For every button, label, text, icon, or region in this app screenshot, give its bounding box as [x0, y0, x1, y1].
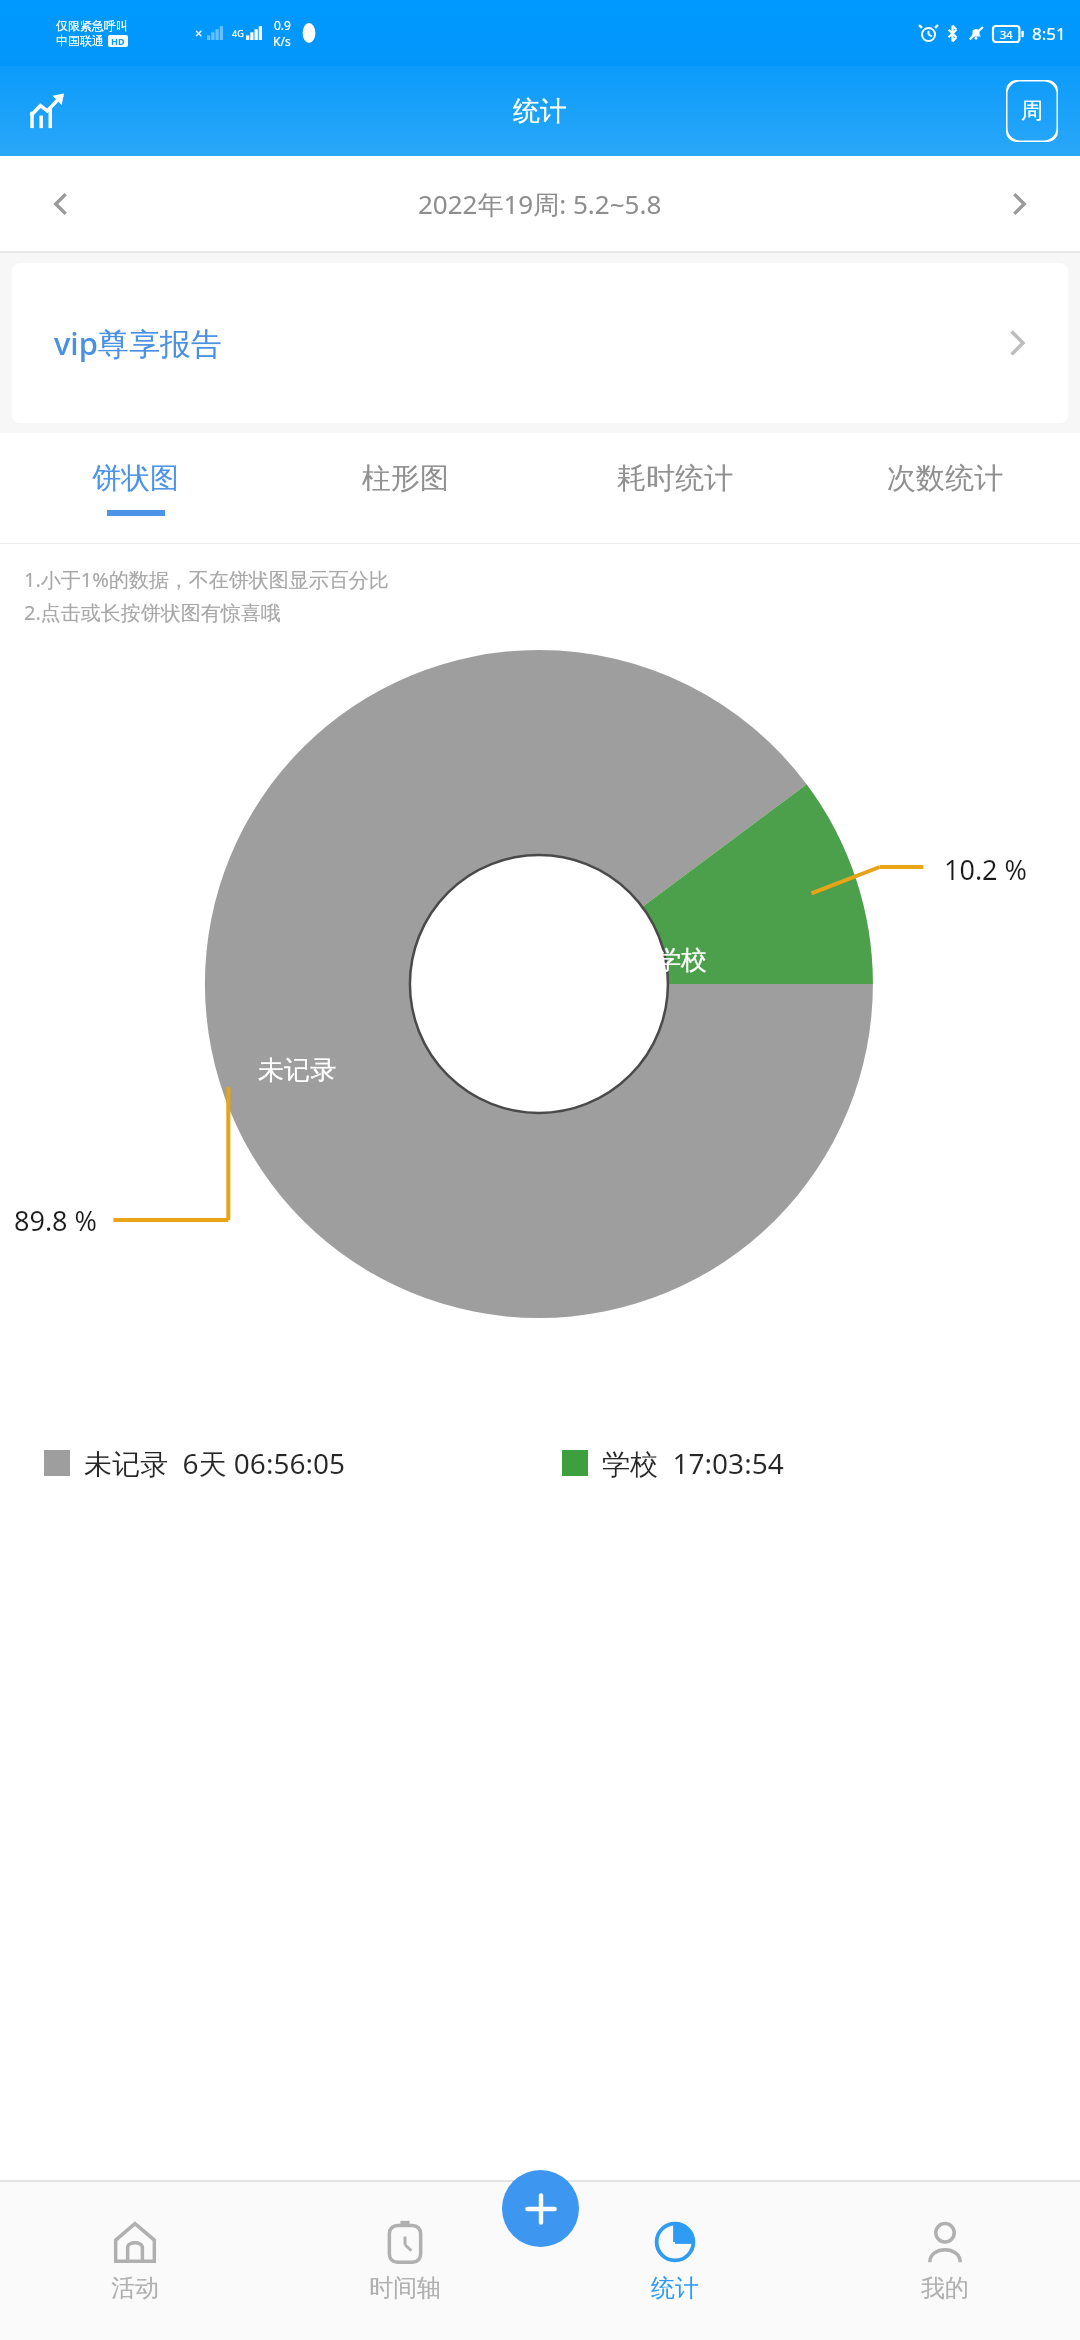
button[interactable]: 周 — [1006, 80, 1058, 142]
staticText: 周 — [1021, 97, 1043, 125]
button[interactable]: 添加 — [502, 2170, 579, 2247]
staticText: 2.点击或长按饼状图有惊喜哦 — [24, 599, 281, 626]
staticText: 饼状图 — [92, 460, 179, 497]
staticText: 2022年19周: 5.2~5.8 — [418, 186, 662, 222]
button[interactable]: 饼状图 — [0, 433, 270, 543]
staticText: 34 — [1000, 27, 1013, 42]
staticText: 学校 — [655, 944, 707, 977]
button[interactable]: 柱形图 — [270, 433, 540, 543]
button[interactable]: 图表 — [20, 83, 76, 139]
staticText: 仅限紧急呼叫 — [56, 18, 128, 33]
button[interactable]: 统计 — [540, 2182, 810, 2340]
staticText: 柱形图 — [362, 460, 449, 497]
staticText: 学校 17:03:54 — [602, 1444, 784, 1482]
staticText: 0.9 — [274, 17, 291, 33]
button[interactable]: vip尊享报告 — [12, 263, 1068, 423]
staticText: 时间轴 — [369, 2273, 441, 2303]
staticText: 8:51 — [1032, 22, 1066, 45]
button[interactable]: 饼状图 — [0, 654, 1080, 1414]
staticText: 89.8 % — [14, 1202, 98, 1239]
staticText: × — [195, 24, 203, 42]
button[interactable]: 耗时统计 — [540, 433, 810, 543]
button[interactable]: 我的 — [810, 2182, 1080, 2340]
staticText: 活动 — [111, 2273, 159, 2303]
staticText: 统计 — [651, 2273, 699, 2303]
button[interactable]: 时间轴 — [270, 2182, 540, 2340]
staticText: 4G — [232, 27, 244, 39]
button[interactable]: 未记录 6天 06:56:05 — [44, 1444, 562, 1482]
button[interactable]: 活动 — [0, 2182, 270, 2340]
button[interactable]: 下一周 — [994, 179, 1044, 229]
staticText: 未记录 6天 06:56:05 — [84, 1444, 345, 1482]
staticText: 统计 — [513, 94, 567, 128]
button[interactable]: 上一周 — [0, 156, 1080, 251]
staticText: 我的 — [921, 2273, 969, 2303]
staticText: HD — [111, 35, 125, 47]
staticText: 次数统计 — [887, 460, 1003, 497]
staticText: 10.2 % — [944, 851, 1028, 888]
staticText: 1.小于1%的数据，不在饼状图显示百分比 — [24, 566, 389, 593]
staticText: 未记录 — [258, 1054, 336, 1087]
staticText: 耗时统计 — [617, 460, 733, 497]
staticText: 中国联通 — [56, 33, 104, 48]
staticText: K/s — [273, 33, 291, 49]
button[interactable]: 次数统计 — [810, 433, 1080, 543]
button[interactable]: 学校 17:03:54 — [562, 1444, 1080, 1482]
staticText: vip尊享报告 — [54, 322, 222, 364]
button[interactable]: 上一周 — [36, 179, 86, 229]
